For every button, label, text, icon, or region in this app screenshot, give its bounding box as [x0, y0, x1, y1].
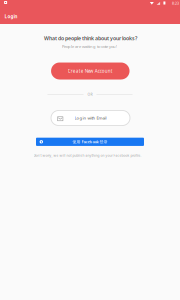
button[interactable]: Login with Email [51, 110, 130, 125]
staticText: What do people think about your looks? [44, 35, 137, 42]
staticText: OR [87, 92, 92, 97]
staticText: Don't worry, we will not publish anythin… [33, 153, 141, 158]
staticText: Login [4, 13, 17, 20]
staticText: Create New Account [68, 68, 113, 74]
staticText: People are waiting to vote you! [62, 44, 117, 49]
staticText: 使用 Facebook 登录 [72, 139, 107, 144]
button[interactable]: 使用 Facebook 登录 [36, 138, 144, 146]
staticText: Login with Email [74, 115, 106, 121]
staticText: 8:23 [172, 1, 179, 6]
button[interactable]: Create New Account [51, 62, 129, 79]
